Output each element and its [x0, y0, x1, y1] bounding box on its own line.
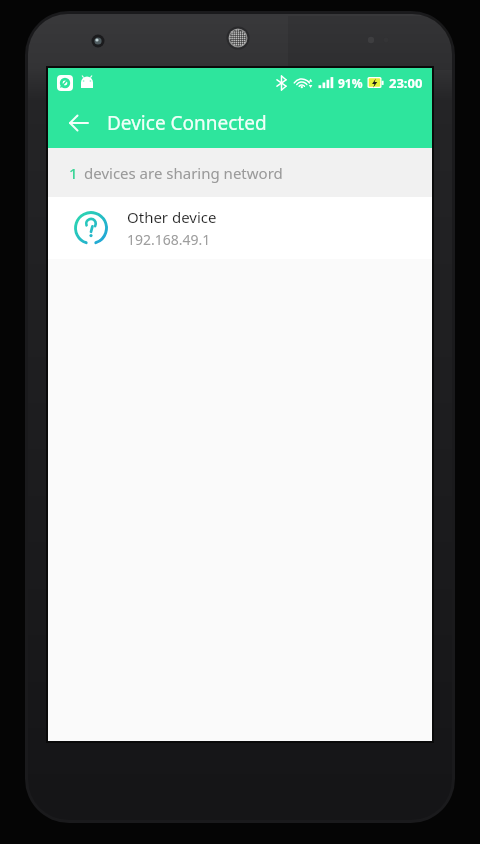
- staticText: 192.168.49.1: [127, 230, 211, 249]
- button[interactable]: Back: [57, 101, 101, 145]
- staticText: devices are sharing netword: [84, 163, 283, 183]
- button[interactable]: Other device: [48, 197, 432, 259]
- staticText: Device Connected: [107, 110, 267, 136]
- staticText: 91%: [338, 75, 363, 91]
- staticText: 1: [69, 163, 78, 183]
- staticText: 23:00: [389, 74, 423, 92]
- staticText: Other device: [127, 207, 217, 227]
